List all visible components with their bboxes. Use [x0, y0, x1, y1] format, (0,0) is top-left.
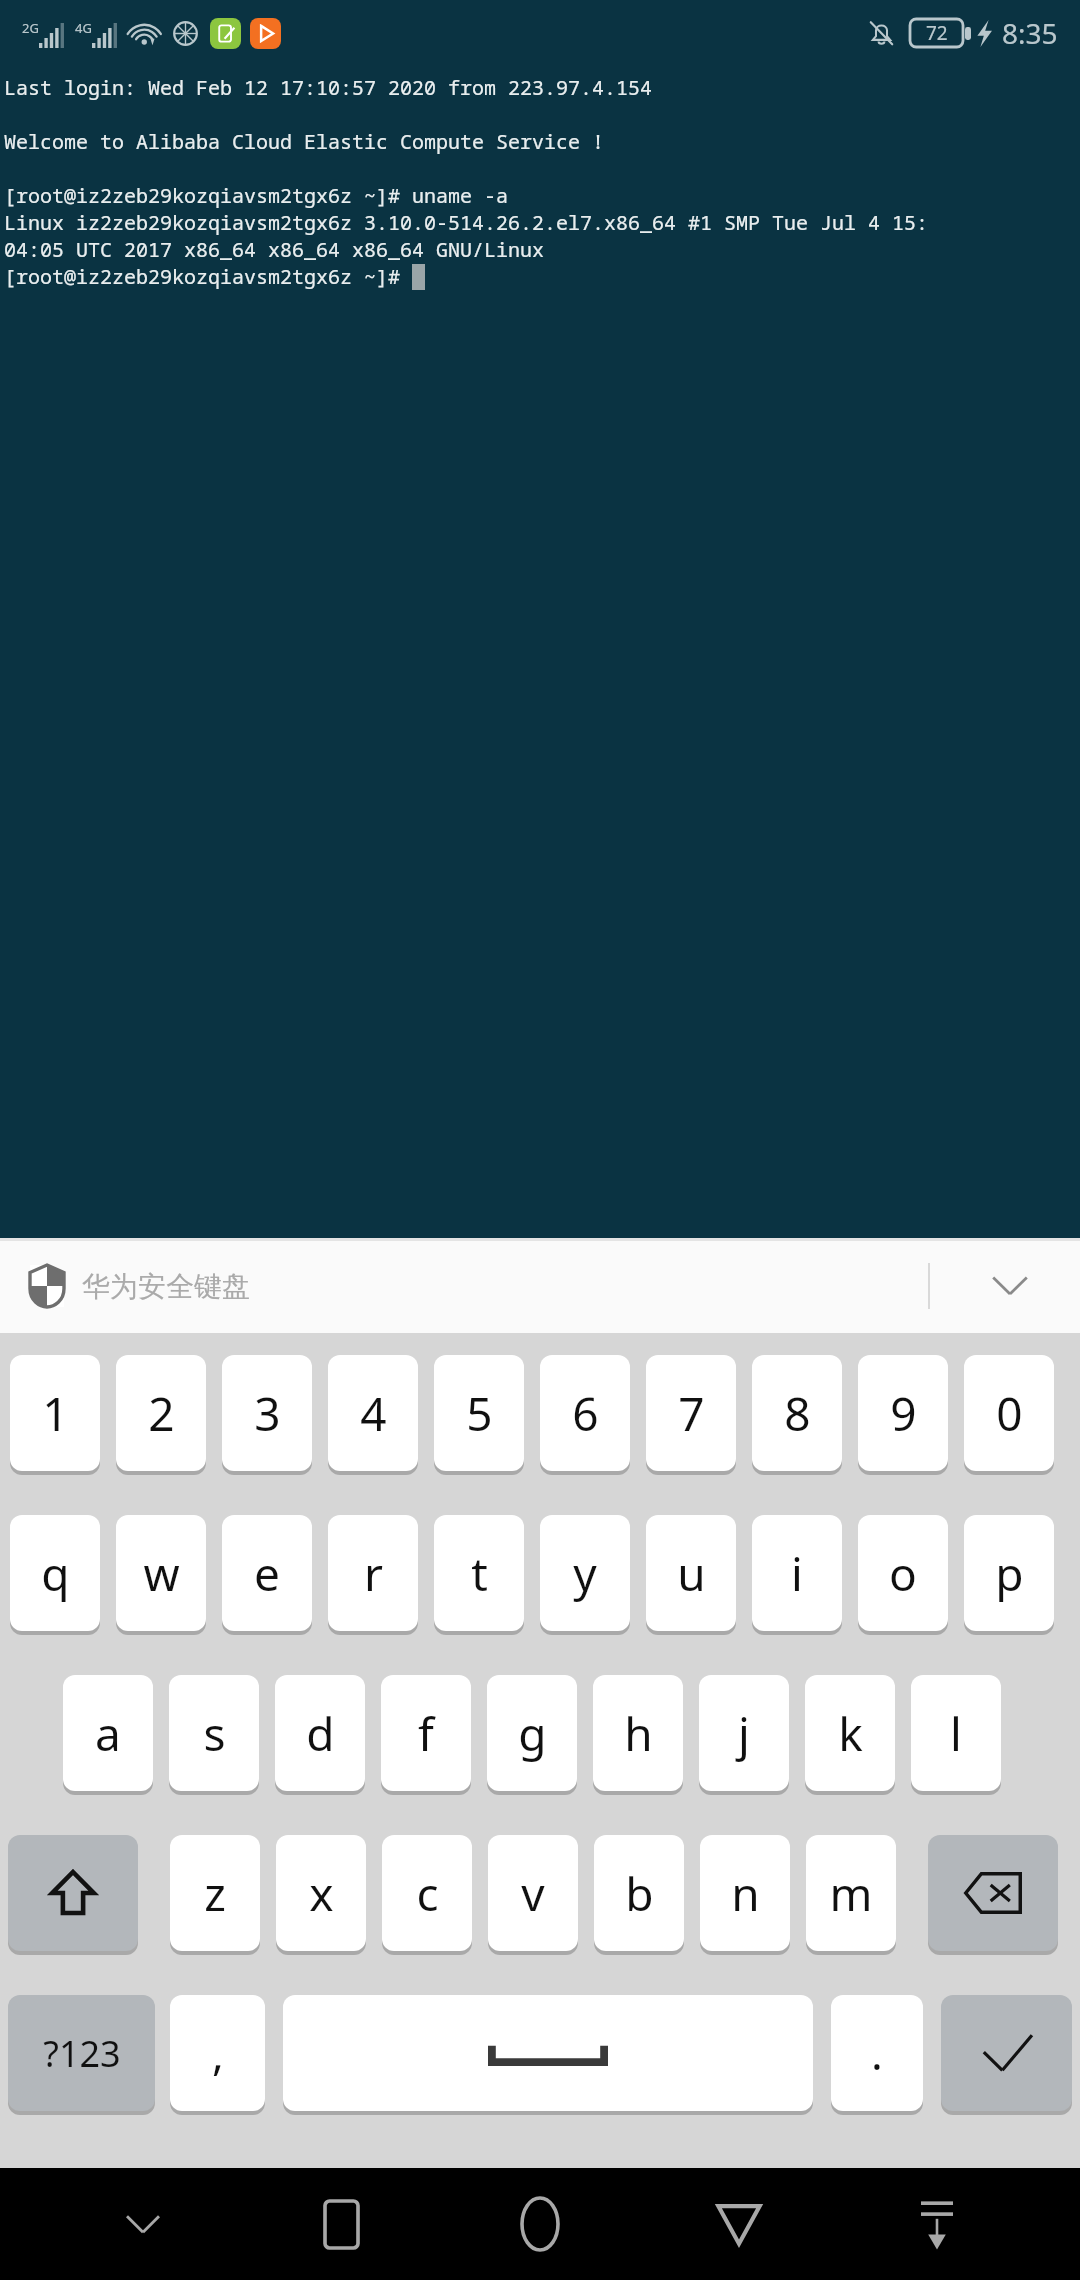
button[interactable]: r	[328, 1515, 418, 1631]
staticText: 8:35	[1002, 14, 1058, 52]
staticText: 1	[42, 1382, 69, 1445]
button[interactable]: q	[10, 1515, 100, 1631]
button[interactable]: 4	[328, 1355, 418, 1471]
staticText: k	[838, 1702, 863, 1765]
staticText: 华为安全键盘	[82, 1269, 250, 1304]
staticText: p	[995, 1542, 1024, 1605]
staticText: [root@iz2zeb29kozqiavsm2tgx6z ~]#	[4, 263, 412, 290]
button[interactable]: 1	[10, 1355, 100, 1471]
button[interactable]: Backspace	[928, 1835, 1058, 1951]
button[interactable]: l	[911, 1675, 1001, 1791]
staticText: m	[829, 1862, 873, 1925]
button[interactable]: 5	[434, 1355, 524, 1471]
button[interactable]: g	[487, 1675, 577, 1791]
staticText: 4	[360, 1382, 387, 1445]
staticText: 2	[148, 1382, 175, 1445]
staticText: j	[738, 1702, 750, 1765]
button[interactable]: f	[381, 1675, 471, 1791]
button[interactable]: n	[700, 1835, 790, 1951]
button[interactable]: Recents	[285, 2168, 397, 2280]
staticText: 3	[254, 1382, 281, 1445]
button[interactable]: 2	[116, 1355, 206, 1471]
staticText: 7	[678, 1382, 705, 1445]
staticText: s	[203, 1702, 226, 1765]
button[interactable]: w	[116, 1515, 206, 1631]
staticText: l	[950, 1702, 962, 1765]
staticText: Linux iz2zeb29kozqiavsm2tgx6z 3.10.0-514…	[4, 209, 928, 236]
staticText: b	[625, 1862, 654, 1925]
staticText: 6	[572, 1382, 599, 1445]
button[interactable]: Space	[283, 1995, 813, 2111]
button[interactable]: z	[170, 1835, 260, 1951]
staticText: c	[416, 1862, 439, 1925]
staticText: y	[573, 1542, 597, 1605]
staticText: g	[518, 1702, 547, 1765]
staticText: .	[871, 2023, 883, 2083]
staticText: v	[521, 1862, 545, 1925]
staticText: t	[471, 1542, 488, 1605]
button[interactable]: .	[831, 1995, 923, 2111]
staticText: ,	[212, 2023, 224, 2083]
staticText: w	[143, 1542, 180, 1605]
button[interactable]: h	[593, 1675, 683, 1791]
button[interactable]: Enter	[941, 1995, 1072, 2111]
staticText: 2G	[22, 19, 39, 37]
button[interactable]: a	[63, 1675, 153, 1791]
button[interactable]: 9	[858, 1355, 948, 1471]
button[interactable]: p	[964, 1515, 1054, 1631]
button[interactable]: 0	[964, 1355, 1054, 1471]
button[interactable]: 6	[540, 1355, 630, 1471]
staticText: a	[95, 1702, 121, 1765]
staticText: h	[624, 1702, 653, 1765]
button[interactable]: Hide keyboard	[940, 1238, 1080, 1333]
button[interactable]: Home	[484, 2168, 596, 2280]
staticText: 9	[890, 1382, 917, 1445]
staticText: q	[41, 1542, 70, 1605]
button[interactable]: v	[488, 1835, 578, 1951]
button[interactable]: j	[699, 1675, 789, 1791]
button[interactable]: b	[594, 1835, 684, 1951]
staticText: n	[731, 1862, 760, 1925]
staticText: 5	[466, 1382, 493, 1445]
staticText: e	[254, 1542, 280, 1605]
staticText: d	[306, 1702, 335, 1765]
button[interactable]: k	[805, 1675, 895, 1791]
button[interactable]: Back	[683, 2168, 795, 2280]
staticText: Welcome to Alibaba Cloud Elastic Compute…	[4, 128, 604, 155]
staticText: r	[364, 1542, 383, 1605]
staticText: ?123	[43, 2029, 121, 2078]
button[interactable]: ,	[170, 1995, 265, 2111]
button[interactable]: x	[276, 1835, 366, 1951]
button[interactable]: s	[169, 1675, 259, 1791]
button[interactable]: c	[382, 1835, 472, 1951]
button[interactable]: ?123	[8, 1995, 155, 2111]
button[interactable]: e	[222, 1515, 312, 1631]
button[interactable]: 3	[222, 1355, 312, 1471]
button[interactable]: 7	[646, 1355, 736, 1471]
button[interactable]: d	[275, 1675, 365, 1791]
button[interactable]: Hide keyboard	[87, 2168, 199, 2280]
button[interactable]: Pull down notifications	[881, 2168, 993, 2280]
staticText: z	[204, 1862, 226, 1925]
staticText: o	[889, 1542, 917, 1605]
staticText: u	[677, 1542, 706, 1605]
button[interactable]: 8	[752, 1355, 842, 1471]
staticText: 8	[784, 1382, 811, 1445]
staticText: 04:05 UTC 2017 x86_64 x86_64 x86_64 GNU/…	[4, 236, 544, 263]
staticText: 4G	[75, 19, 92, 37]
button[interactable]: u	[646, 1515, 736, 1631]
button[interactable]: y	[540, 1515, 630, 1631]
button[interactable]: Shift	[8, 1835, 138, 1951]
staticText: f	[418, 1702, 434, 1765]
staticText: 0	[996, 1382, 1023, 1445]
button[interactable]: o	[858, 1515, 948, 1631]
staticText: x	[309, 1862, 334, 1925]
button[interactable]: m	[806, 1835, 896, 1951]
button[interactable]: i	[752, 1515, 842, 1631]
staticText: Last login: Wed Feb 12 17:10:57 2020 fro…	[4, 74, 652, 101]
staticText: i	[791, 1542, 803, 1605]
staticText: 72	[926, 20, 948, 46]
staticText: [root@iz2zeb29kozqiavsm2tgx6z ~]# uname …	[4, 182, 508, 209]
button[interactable]: t	[434, 1515, 524, 1631]
